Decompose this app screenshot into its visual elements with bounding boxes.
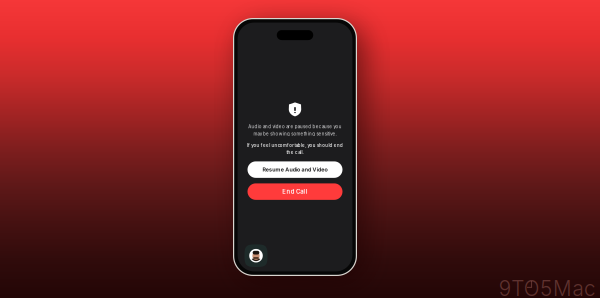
staticText: End Call — [282, 188, 308, 195]
button[interactable]: End Call — [247, 183, 342, 200]
staticText: Audio and video are paused because you — [248, 124, 342, 129]
staticText: the call. — [286, 150, 303, 155]
staticText: may be showing something sensitive. — [253, 131, 337, 136]
staticText: If you feel uncomfortable, you should en… — [247, 143, 343, 148]
staticText: Resume Audio and Video — [262, 166, 327, 173]
button[interactable]: Resume Audio and Video — [247, 161, 342, 178]
staticText: 9TO5Mac — [499, 276, 595, 298]
button[interactable]: Self view camera — [244, 244, 267, 267]
